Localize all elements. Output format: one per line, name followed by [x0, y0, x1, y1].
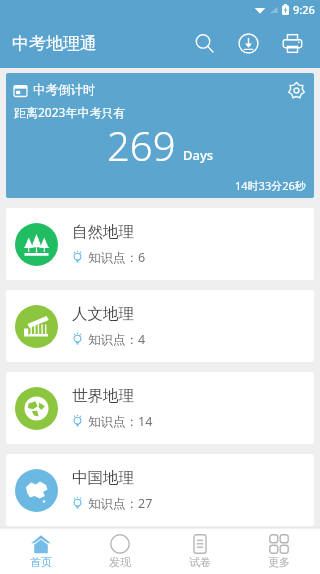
- button[interactable]: 人文地理: [6, 290, 314, 362]
- staticText: 首页: [30, 555, 52, 569]
- button[interactable]: 首页: [2, 528, 80, 574]
- staticText: 知识点：4: [88, 331, 146, 348]
- button[interactable]: 试卷: [161, 528, 239, 574]
- button[interactable]: Print: [270, 21, 314, 65]
- staticText: 中考倒计时: [33, 82, 96, 98]
- staticText: 世界地理: [72, 386, 134, 406]
- staticText: 中国地理: [72, 468, 134, 488]
- staticText: 发现: [109, 555, 131, 569]
- staticText: 知识点：14: [88, 413, 153, 430]
- staticText: 更多: [268, 555, 290, 569]
- staticText: Days: [183, 146, 214, 164]
- staticText: 269: [107, 118, 176, 172]
- button[interactable]: 自然地理: [6, 208, 314, 280]
- staticText: 距离2023年中考只有: [14, 104, 126, 120]
- button[interactable]: Settings: [283, 77, 309, 103]
- staticText: 知识点：6: [88, 249, 146, 266]
- staticText: 人文地理: [72, 304, 134, 324]
- staticText: 9:26: [293, 2, 315, 17]
- staticText: 14时33分26秒: [235, 178, 306, 193]
- button[interactable]: Search: [182, 21, 226, 65]
- staticText: 中考地理通: [12, 33, 97, 54]
- button[interactable]: 更多: [240, 528, 318, 574]
- staticText: 自然地理: [72, 222, 134, 242]
- button[interactable]: 发现: [81, 528, 159, 574]
- button[interactable]: Download: [226, 21, 270, 65]
- staticText: 知识点：27: [88, 495, 153, 512]
- button[interactable]: 中考倒计时: [6, 73, 314, 198]
- staticText: 试卷: [189, 555, 211, 569]
- button[interactable]: 世界地理: [6, 372, 314, 444]
- button[interactable]: 中国地理: [6, 454, 314, 526]
